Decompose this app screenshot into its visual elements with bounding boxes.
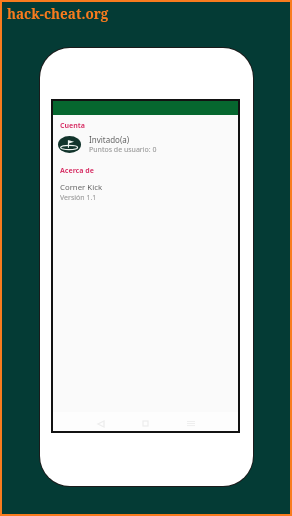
button[interactable]: Back bbox=[78, 414, 123, 433]
staticText: Cuenta bbox=[60, 121, 86, 131]
button[interactable]: Invitado(a) bbox=[53, 133, 238, 156]
button[interactable]: Corner Kick bbox=[53, 182, 238, 203]
staticText: Invitado(a) bbox=[89, 134, 130, 145]
button[interactable]: Recents bbox=[168, 414, 213, 433]
staticText: Puntos de usuario: 0 bbox=[89, 145, 157, 155]
staticText: hack-cheat.org bbox=[7, 5, 109, 23]
button[interactable]: Home bbox=[123, 414, 168, 433]
staticText: Versión 1.1 bbox=[60, 193, 97, 203]
staticText: Acerca de bbox=[60, 166, 94, 176]
staticText: Corner Kick bbox=[60, 182, 103, 193]
